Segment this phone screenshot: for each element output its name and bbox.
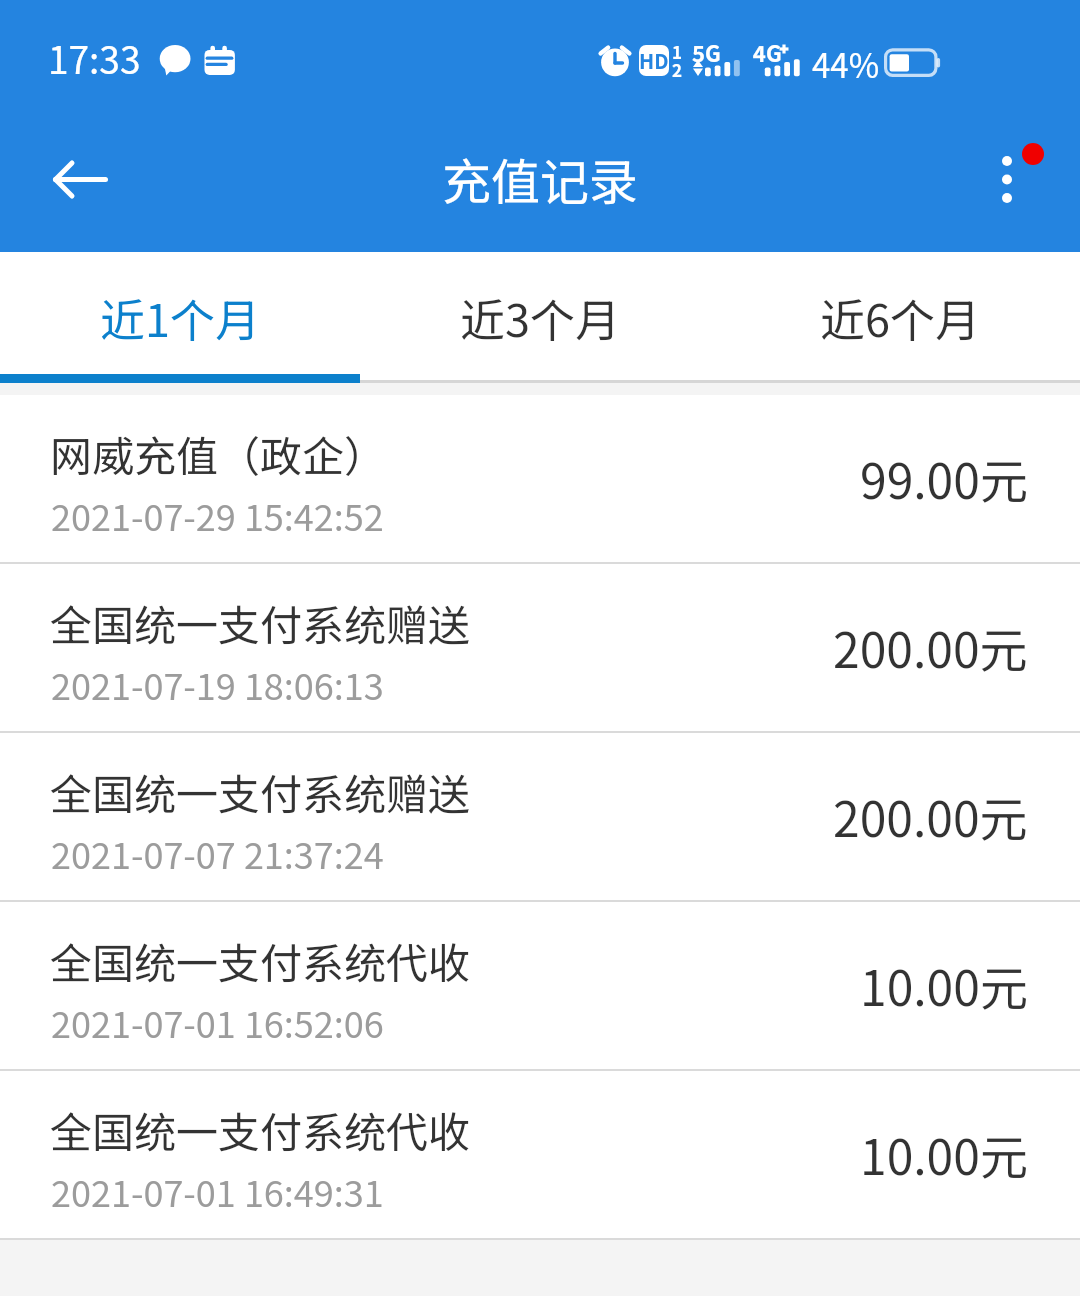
button[interactable]: Back xyxy=(20,130,140,230)
staticText: 全国统一支付系统赠送 xyxy=(50,592,471,653)
staticText: 近3个月 xyxy=(460,285,620,350)
staticText: 200.00元 xyxy=(833,612,1028,682)
button[interactable]: 全国统一支付系统代收 xyxy=(0,902,1080,1069)
staticText: 全国统一支付系统代收 xyxy=(50,1099,471,1160)
button[interactable]: 全国统一支付系统赠送 xyxy=(0,733,1080,900)
button[interactable]: 近6个月 xyxy=(720,252,1080,383)
staticText: 10.00元 xyxy=(860,950,1028,1020)
staticText: 近1个月 xyxy=(100,285,260,350)
staticText: HD xyxy=(639,46,669,75)
staticText: 2021-07-01 16:52:06 xyxy=(51,996,384,1048)
button[interactable]: 近1个月 xyxy=(0,252,360,383)
button[interactable]: 近3个月 xyxy=(360,252,720,383)
staticText: 200.00元 xyxy=(833,781,1028,851)
button[interactable]: 全国统一支付系统代收 xyxy=(0,1071,1080,1238)
staticText: 近6个月 xyxy=(820,285,980,350)
staticText: 1 xyxy=(672,39,683,64)
staticText: 4G xyxy=(753,36,782,68)
button[interactable]: 全国统一支付系统赠送 xyxy=(0,564,1080,731)
staticText: 全国统一支付系统赠送 xyxy=(50,761,471,822)
staticText: 17:33 xyxy=(48,31,141,85)
staticText: 2021-07-19 18:06:13 xyxy=(51,658,384,710)
staticText: 5G xyxy=(692,36,721,68)
staticText: 2021-07-07 21:37:24 xyxy=(51,827,384,879)
staticText: 2 xyxy=(672,57,683,82)
button[interactable]: More options xyxy=(960,120,1060,230)
staticText: 10.00元 xyxy=(860,1119,1028,1189)
staticText: 99.00元 xyxy=(860,443,1028,513)
staticText: 网威充值（政企） xyxy=(50,423,387,484)
staticText: 44% xyxy=(812,40,880,88)
staticText: 2021-07-29 15:42:52 xyxy=(51,489,384,541)
button[interactable]: 网威充值（政企） xyxy=(0,395,1080,562)
staticText: 充值记录 xyxy=(442,143,639,214)
staticText: 2021-07-01 16:49:31 xyxy=(51,1165,384,1217)
staticText: 全国统一支付系统代收 xyxy=(50,930,471,991)
